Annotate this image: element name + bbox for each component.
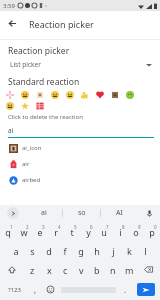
staticText: q xyxy=(5,226,11,238)
staticText: i xyxy=(119,226,122,238)
staticText: z xyxy=(30,264,35,276)
button[interactable]: z xyxy=(24,260,41,279)
staticText: x xyxy=(47,264,52,276)
staticText: m xyxy=(125,264,134,276)
staticText: 9 xyxy=(138,224,141,230)
button[interactable]: c xyxy=(57,260,73,279)
button[interactable]: Reaction xyxy=(36,102,44,110)
button[interactable]: Shift xyxy=(0,260,24,279)
button[interactable]: . xyxy=(118,279,132,300)
button[interactable]: Reaction xyxy=(111,91,119,99)
staticText: 7 xyxy=(106,224,109,230)
staticText: Reaction picker xyxy=(29,18,94,30)
button[interactable]: ai_icon xyxy=(4,140,152,156)
staticText: g xyxy=(78,245,84,257)
button[interactable]: Send xyxy=(137,283,155,296)
button[interactable]: List picker xyxy=(0,60,160,69)
staticText: AI xyxy=(116,208,123,218)
button[interactable]: Star xyxy=(21,102,29,110)
staticText: Click to delete the reaction xyxy=(8,113,83,121)
button[interactable]: Reaction xyxy=(6,102,14,110)
staticText: h xyxy=(94,245,100,257)
button[interactable]: s xyxy=(24,241,41,260)
staticText: r xyxy=(54,226,58,238)
button[interactable]: f xyxy=(57,241,73,260)
button[interactable]: x xyxy=(41,260,57,279)
staticText: u xyxy=(101,226,107,238)
button[interactable]: Reaction xyxy=(6,91,14,99)
staticText: 0 xyxy=(154,224,157,230)
button[interactable]: w xyxy=(16,222,32,241)
button[interactable]: Reaction xyxy=(21,91,29,99)
staticText: 5 xyxy=(74,224,77,230)
staticText: y xyxy=(86,226,91,238)
button[interactable]: Backspace xyxy=(137,260,160,279)
button[interactable]: Emoji xyxy=(42,279,58,300)
button[interactable]: m xyxy=(121,260,137,279)
button[interactable]: l xyxy=(137,241,153,260)
button[interactable]: More suggestions xyxy=(0,205,26,221)
staticText: c xyxy=(63,264,68,276)
staticText: so xyxy=(78,208,86,218)
button[interactable]: u xyxy=(96,222,112,241)
button[interactable]: ?123 xyxy=(0,279,28,300)
button[interactable]: q xyxy=(0,222,16,241)
button[interactable]: b xyxy=(89,260,105,279)
staticText: Reaction picker xyxy=(8,45,70,57)
button[interactable]: airbed xyxy=(4,172,152,188)
button[interactable]: Back xyxy=(0,11,25,36)
staticText: ai xyxy=(41,208,47,218)
staticText: 3:59 xyxy=(3,2,15,10)
button[interactable]: Reaction xyxy=(126,91,134,99)
button[interactable]: a xyxy=(7,241,24,260)
staticText: f xyxy=(63,245,67,257)
button[interactable]: i xyxy=(112,222,128,241)
staticText: d xyxy=(46,245,52,257)
button[interactable]: y xyxy=(80,222,96,241)
staticText: air xyxy=(22,160,30,168)
button[interactable]: g xyxy=(73,241,89,260)
button[interactable]: AI xyxy=(101,205,138,221)
button[interactable]: t xyxy=(64,222,80,241)
staticText: 6 xyxy=(90,224,93,230)
button[interactable]: so xyxy=(63,205,100,221)
staticText: 2 xyxy=(26,224,29,230)
staticText: o xyxy=(133,226,139,238)
button[interactable] xyxy=(58,279,118,300)
button[interactable]: o xyxy=(128,222,144,241)
staticText: l xyxy=(144,245,147,257)
button[interactable]: e xyxy=(32,222,48,241)
staticText: t xyxy=(70,226,74,238)
button[interactable]: , xyxy=(28,279,42,300)
button[interactable]: r xyxy=(48,222,64,241)
button[interactable]: Reaction xyxy=(51,91,59,99)
button[interactable]: d xyxy=(41,241,57,260)
button[interactable]: air xyxy=(4,156,152,172)
staticText: e xyxy=(37,226,43,238)
button[interactable]: Thumbs up xyxy=(81,91,89,99)
staticText: 8 xyxy=(122,224,125,230)
staticText: a xyxy=(13,245,19,257)
button[interactable]: Heart xyxy=(96,91,104,99)
button[interactable]: Reaction xyxy=(66,91,74,99)
button[interactable]: k xyxy=(121,241,137,260)
button[interactable]: j xyxy=(105,241,121,260)
staticText: ai xyxy=(8,126,14,135)
staticText: Standard reaction xyxy=(8,76,80,88)
button[interactable]: Voice input xyxy=(138,205,160,221)
staticText: ?123 xyxy=(8,286,21,294)
button[interactable]: p xyxy=(144,222,160,241)
staticText: airbed xyxy=(22,176,41,184)
button[interactable]: h xyxy=(89,241,105,260)
button[interactable]: Reaction xyxy=(36,91,44,99)
button[interactable]: ai xyxy=(26,205,62,221)
staticText: . xyxy=(124,284,127,295)
staticText: 1 xyxy=(10,224,13,230)
staticText: w xyxy=(20,226,28,238)
staticText: List picker xyxy=(10,60,41,69)
staticText: j xyxy=(112,245,115,257)
staticText: b xyxy=(94,264,100,276)
staticText: 4 xyxy=(58,224,61,230)
button[interactable]: n xyxy=(105,260,121,279)
button[interactable]: v xyxy=(73,260,89,279)
